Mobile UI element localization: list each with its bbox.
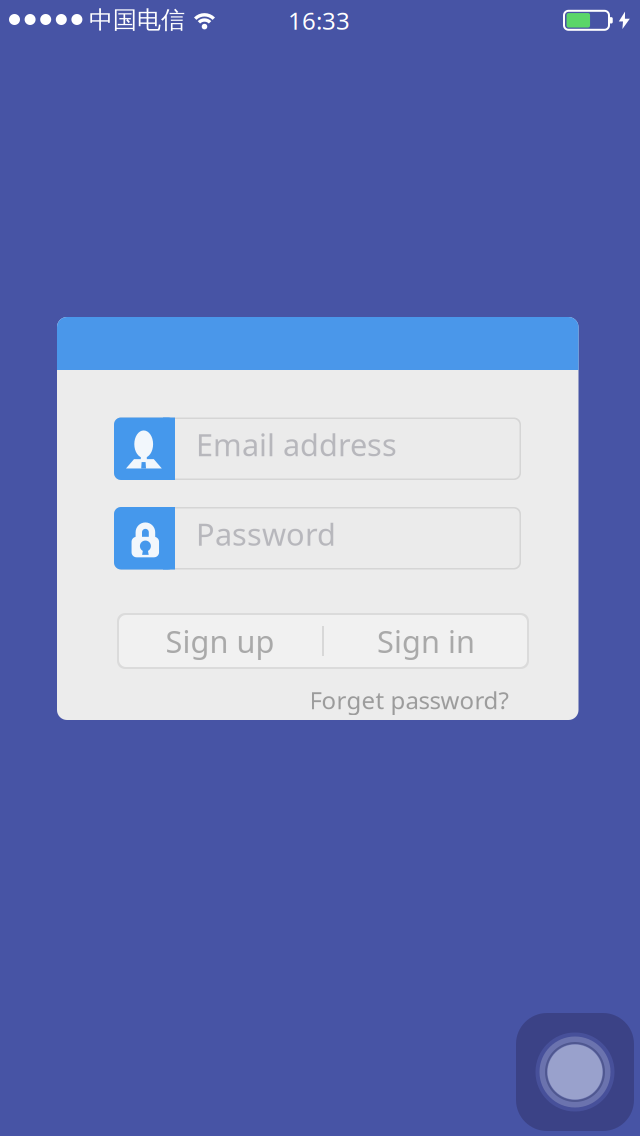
button[interactable]: Email address: [114, 417, 521, 480]
button[interactable]: Sign in: [324, 613, 528, 669]
staticText: Sign in: [377, 621, 475, 661]
button[interactable]: AssistiveTouch: [516, 1013, 634, 1131]
staticText: 中国电信: [89, 5, 185, 35]
button[interactable]: Sign up: [118, 613, 322, 669]
staticText: Sign up: [165, 621, 274, 661]
staticText: 16:33: [288, 5, 350, 36]
staticText: Forget password?: [309, 684, 508, 716]
staticText: Email address: [196, 424, 397, 465]
staticText: Password: [196, 513, 336, 554]
button[interactable]: Forget password?: [208, 682, 508, 718]
button[interactable]: Password: [114, 507, 521, 569]
